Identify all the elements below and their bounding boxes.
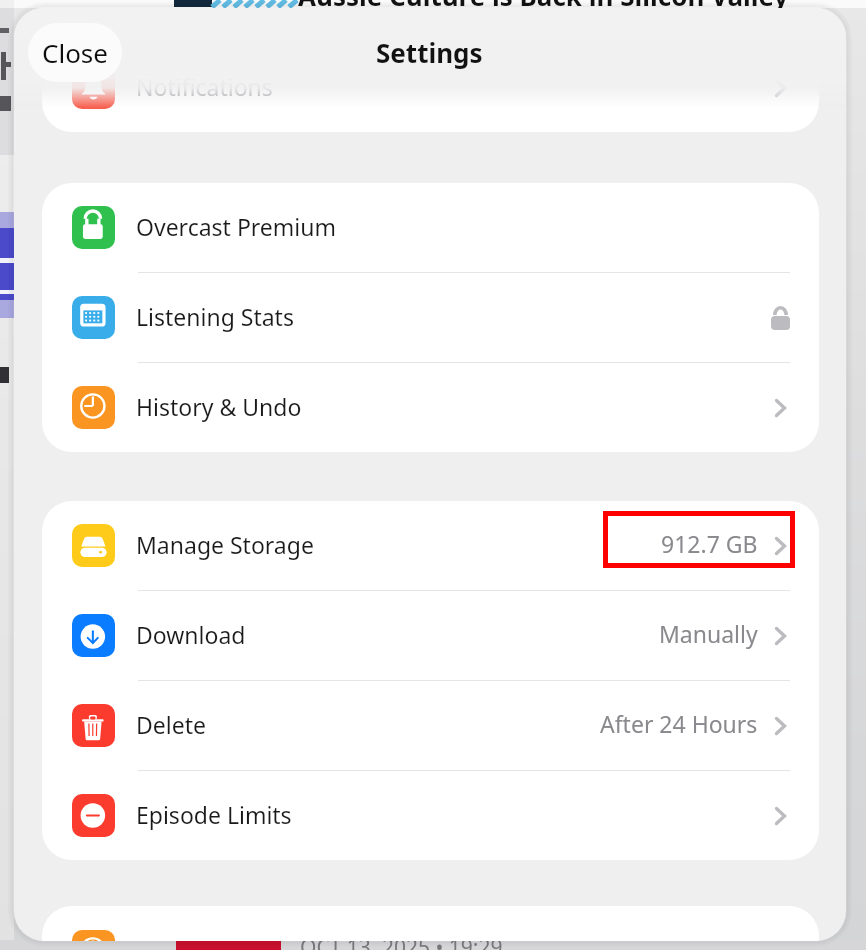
button[interactable]: Manage Storage bbox=[42, 501, 819, 590]
staticText: Manually bbox=[659, 618, 758, 649]
button[interactable]: Download bbox=[42, 591, 819, 680]
button[interactable]: Delete bbox=[42, 681, 819, 770]
staticText: After 24 Hours bbox=[600, 708, 758, 739]
staticText: Listening Stats bbox=[136, 301, 294, 332]
staticText: Delete bbox=[136, 709, 206, 740]
button[interactable]: Episode Limits bbox=[42, 771, 819, 860]
staticText: 912.7 GB bbox=[661, 528, 758, 559]
button[interactable]: Overcast Premium bbox=[42, 183, 819, 272]
staticText: Overcast Premium bbox=[136, 211, 336, 242]
button[interactable]: Notifications bbox=[42, 43, 819, 132]
staticText: Manage Storage bbox=[136, 529, 314, 560]
button[interactable]: Listening Stats bbox=[42, 273, 819, 362]
staticText: Notifications bbox=[136, 71, 273, 102]
staticText: OCT 13, 2025 • 19:29 bbox=[300, 940, 503, 950]
button[interactable]: History & Undo bbox=[42, 363, 819, 452]
staticText: Download bbox=[136, 619, 246, 650]
staticText: Episode Limits bbox=[136, 799, 292, 830]
staticText: History & Undo bbox=[136, 391, 302, 422]
staticText: Settings bbox=[376, 35, 483, 70]
staticText: Close bbox=[42, 35, 108, 70]
staticText: Aussie Culture is Back in Silicon Valley bbox=[298, 0, 789, 8]
button[interactable]: Close bbox=[28, 23, 122, 82]
